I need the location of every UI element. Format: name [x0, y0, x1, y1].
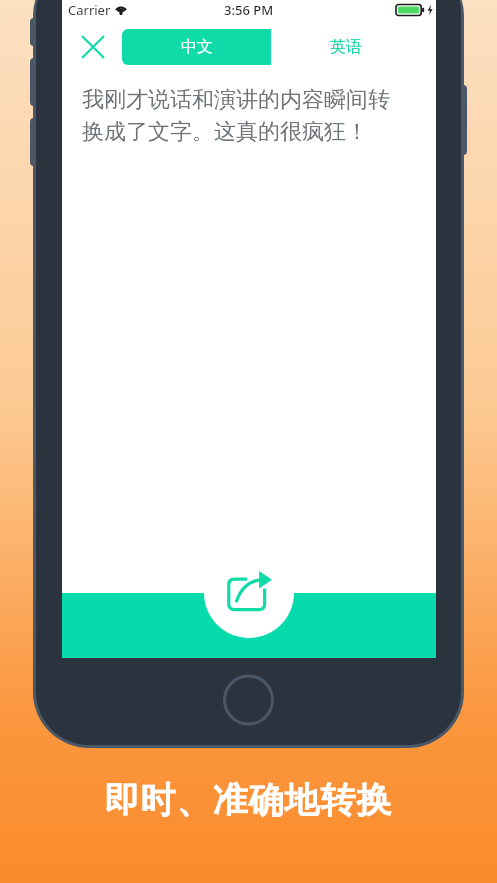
button[interactable]: Close	[72, 26, 114, 68]
staticText: Carrier	[68, 1, 111, 19]
staticText: 英语	[330, 37, 362, 57]
staticText: 中文	[181, 37, 213, 57]
button[interactable]: 中文	[122, 29, 271, 65]
button[interactable]: 英语	[271, 29, 420, 65]
staticText: 我刚才说话和演讲的内容瞬间转换成了文字。这真的很疯狂！	[82, 86, 410, 145]
staticText: 3:56 PM	[224, 1, 274, 19]
button[interactable]: Share	[204, 548, 294, 638]
staticText: 即时、准确地转换	[0, 778, 497, 822]
